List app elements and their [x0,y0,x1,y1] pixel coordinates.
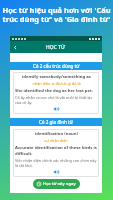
staticText: identify somebody/something as [22,74,91,80]
button[interactable]: identification (noun) [13,129,99,177]
button[interactable]: Play audio [53,169,59,175]
staticText: nhận diện ai đó/cái gì đó là [32,81,81,86]
staticText: identification (noun) [35,131,78,137]
staticText: Accurate identification of these birds i… [15,145,97,157]
button[interactable]: Back [13,45,18,50]
staticText: Việc nhận diện chính xác những con chim … [15,158,97,168]
button[interactable]: Có 2 cấu trúc dùng từ [10,62,102,70]
staticText: She identified the dog as her lost pet. [15,88,97,94]
staticText: Học từ này ngay [43,181,76,187]
staticText: Cô ấy nhận ra con chó là vật nuôi bị thấ… [15,95,97,105]
button[interactable]: Play audio [53,106,59,112]
staticText: HỌC TỪ [46,44,66,51]
button[interactable]: Có 2 gia đình từ [10,118,102,126]
staticText: Có 2 gia đình từ [39,119,73,125]
staticText: sự nhận diện [44,138,68,143]
staticText: Có 2 cấu trúc dùng từ [33,63,80,69]
staticText: Học từ hiệu quả hơn với 'Cấu trúc dùng t… [0,5,113,24]
button[interactable]: identify somebody/something as [13,72,99,114]
button[interactable]: Học từ này ngay [33,179,80,189]
